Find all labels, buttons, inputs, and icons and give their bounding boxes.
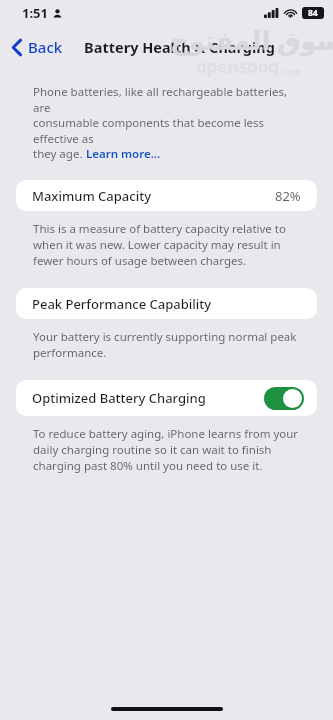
staticText: Back xyxy=(28,37,63,57)
staticText: السوق المفتوح xyxy=(170,22,333,57)
staticText: Optimized Battery Charging xyxy=(32,389,206,407)
staticText: consumable components that become less e… xyxy=(33,115,303,146)
staticText: This is a measure of battery capacity re… xyxy=(33,221,299,269)
staticText: Your battery is currently supporting nor… xyxy=(33,329,299,361)
staticText: Peak Performance Capability xyxy=(32,295,212,313)
button[interactable]: Back xyxy=(8,33,67,61)
button[interactable]: Peak Performance Capability xyxy=(16,288,317,319)
staticText: they age. xyxy=(33,146,86,162)
staticText: 1:51 xyxy=(22,4,48,22)
button[interactable]: Maximum Capacity xyxy=(16,180,317,211)
staticText: Phone batteries, like all rechargeable b… xyxy=(33,84,303,115)
button[interactable]: Optimized Battery Charging toggle, on xyxy=(264,387,304,410)
button[interactable]: Learn more... xyxy=(86,146,161,162)
button[interactable]: Optimized Battery Charging xyxy=(16,380,317,416)
staticText: .com xyxy=(280,65,302,77)
staticText: opensooq xyxy=(196,55,280,78)
staticText: 84 xyxy=(308,7,318,19)
staticText: Learn more... xyxy=(86,146,161,162)
staticText: Maximum Capacity xyxy=(32,187,152,205)
staticText: To reduce battery aging, iPhone learns f… xyxy=(33,426,299,474)
staticText: Battery Health & Charging xyxy=(84,37,275,57)
staticText: 82% xyxy=(275,187,301,205)
